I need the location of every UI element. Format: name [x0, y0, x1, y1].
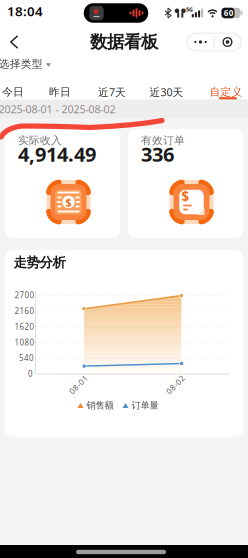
- staticText: 订单量: [131, 400, 158, 411]
- button[interactable]: 实际收入: [5, 129, 120, 238]
- button[interactable]: 近7天: [98, 85, 126, 99]
- staticText: 1620: [14, 321, 34, 332]
- staticText: 08-01: [67, 379, 90, 390]
- button[interactable]: 订单量: [122, 400, 158, 411]
- button[interactable]: [187, 33, 213, 51]
- staticText: 0: [28, 368, 33, 379]
- button[interactable]: 今日: [2, 85, 24, 98]
- staticText: 自定义: [209, 85, 242, 98]
- staticText: 336: [141, 141, 174, 167]
- staticText: 昨日: [49, 85, 71, 98]
- staticText: 2025-08-01 - 2025-08-02: [0, 102, 115, 116]
- button[interactable]: 近30天: [149, 85, 183, 99]
- button[interactable]: 有效订单: [128, 129, 243, 238]
- staticText: 近30天: [149, 85, 183, 99]
- staticText: 1080: [14, 337, 34, 348]
- button[interactable]: [5, 30, 23, 54]
- staticText: 08-02: [164, 379, 187, 390]
- button[interactable]: [214, 33, 240, 51]
- staticText: 今日: [2, 85, 24, 98]
- staticText: 销售额: [86, 400, 113, 411]
- staticText: 有效订单: [141, 134, 185, 147]
- staticText: 近7天: [98, 85, 126, 99]
- staticText: 18:04: [7, 2, 43, 20]
- staticText: 5G: [186, 6, 193, 13]
- staticText: 60: [224, 8, 234, 18]
- staticText: 540: [19, 353, 34, 363]
- button[interactable]: 选择类型: [0, 57, 51, 70]
- staticText: 4,914.49: [18, 141, 96, 167]
- staticText: 选择类型: [0, 57, 43, 70]
- button[interactable]: 自定义: [209, 85, 242, 98]
- staticText: 数据看板: [90, 31, 158, 53]
- staticText: 实际收入: [18, 134, 62, 147]
- staticText: 2160: [14, 306, 34, 316]
- staticText: 2700: [14, 290, 34, 300]
- button[interactable]: 2025-08-01 - 2025-08-02: [0, 102, 115, 116]
- button[interactable]: 销售额: [77, 400, 113, 411]
- staticText: $: [65, 195, 71, 209]
- staticText: $: [181, 187, 189, 205]
- button[interactable]: 昨日: [49, 85, 71, 98]
- staticText: 走势分析: [13, 254, 65, 271]
